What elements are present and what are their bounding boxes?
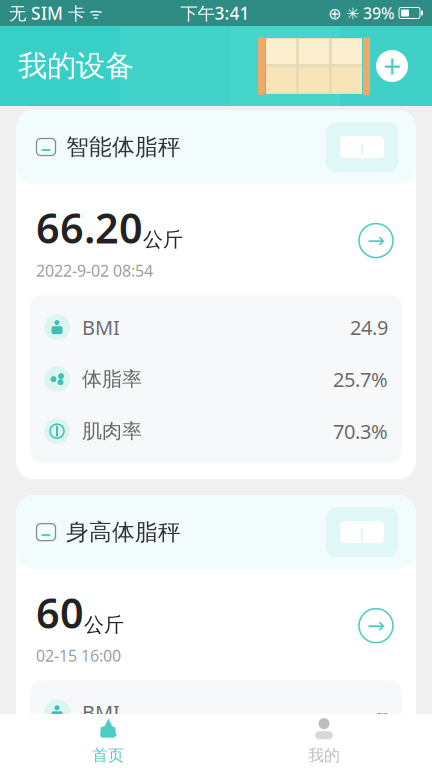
staticText: 25.7% xyxy=(333,366,388,392)
staticText: 首页 xyxy=(92,746,124,765)
staticText: ᯤ xyxy=(85,3,102,23)
button[interactable]: 智能体脂秤 xyxy=(16,110,416,479)
staticText: + xyxy=(383,45,401,87)
staticText: 无 SIM 卡 xyxy=(9,1,85,24)
staticText: 24.9 xyxy=(350,314,388,340)
staticText: 60 xyxy=(36,585,84,640)
button[interactable]: 身高体脂秤 xyxy=(16,495,416,768)
staticText: 公斤 xyxy=(143,227,183,252)
button[interactable]: 添加设备 xyxy=(370,44,414,88)
staticText: BMI xyxy=(82,314,120,340)
staticText: 身高体脂秤 xyxy=(66,518,181,546)
staticText: 肌肉率 xyxy=(82,419,142,443)
staticText: 智能体脂秤 xyxy=(66,133,181,161)
staticText: 体脂率 xyxy=(82,752,142,768)
staticText: 70.3% xyxy=(333,418,388,444)
staticText: 下午3:41 xyxy=(180,1,249,24)
staticText: 02-15 16:00 xyxy=(36,645,121,666)
staticText: → xyxy=(367,228,385,253)
staticText: 我的设备 xyxy=(18,48,134,84)
staticText: 公斤 xyxy=(84,612,124,637)
staticText: ▲ xyxy=(99,712,116,738)
button[interactable]: ▲ xyxy=(0,714,216,768)
staticText: 体脂率 xyxy=(82,367,142,391)
staticText: BMI xyxy=(82,699,120,726)
staticText: 我的 xyxy=(308,746,340,765)
staticText: 66.20 xyxy=(36,200,143,255)
staticText: ⊕ ✳ 39% xyxy=(328,2,395,24)
staticText: → xyxy=(367,614,385,638)
button[interactable]: 我的 xyxy=(216,714,432,768)
staticText: -- xyxy=(376,699,388,726)
staticText: 2022-9-02 08:54 xyxy=(36,260,153,281)
